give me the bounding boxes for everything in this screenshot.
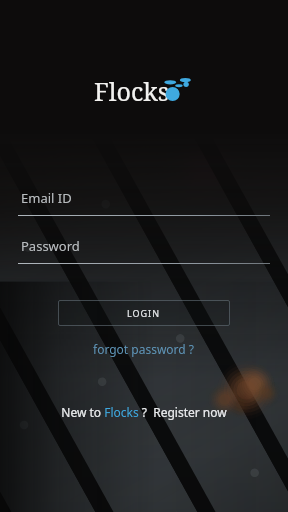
staticText: Flocks: [94, 74, 170, 104]
staticText: forgot password ?: [93, 341, 195, 357]
button[interactable]: LOGIN: [58, 300, 230, 326]
button[interactable]: Email ID: [18, 187, 270, 216]
staticText: Email ID: [21, 189, 72, 207]
staticText: LOGIN: [127, 307, 161, 319]
button[interactable]: Password: [18, 235, 270, 264]
button[interactable]: forgot password ?: [85, 338, 203, 360]
staticText: Password: [21, 237, 80, 255]
staticText: New to Flocks ? Register now: [61, 404, 227, 420]
button[interactable]: New to Flocks ? Register now: [53, 401, 235, 423]
